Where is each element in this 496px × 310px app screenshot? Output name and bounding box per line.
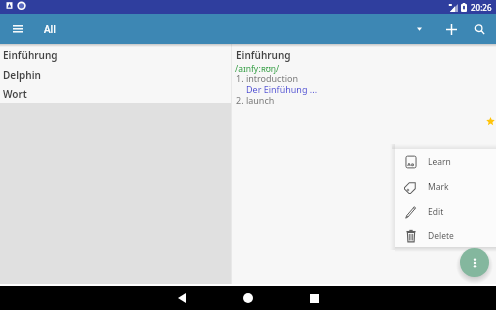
staticText: 1. introduction (236, 72, 299, 84)
button[interactable]: Delphin (0, 64, 231, 84)
button[interactable]: Wort (0, 83, 231, 103)
button[interactable]: Search (465, 14, 493, 44)
button[interactable]: Add (437, 14, 465, 44)
staticText: 2. launch (236, 94, 275, 106)
staticText: Edit (428, 206, 444, 218)
staticText: Der Einfühung ... (246, 83, 318, 95)
staticText: 20:26 (471, 2, 492, 13)
staticText: Learn (428, 156, 451, 168)
button[interactable]: Edit (395, 199, 496, 224)
button[interactable]: Home (230, 286, 266, 310)
button[interactable]: Recents (296, 286, 332, 310)
button[interactable]: Delete (395, 224, 496, 247)
staticText: Einführung (3, 48, 58, 62)
staticText: Delphin (3, 68, 41, 82)
staticText: Delete (428, 230, 454, 242)
staticText: Einführung (236, 48, 291, 62)
button[interactable]: Learn (395, 149, 496, 174)
button[interactable]: Einführung (0, 44, 231, 64)
staticText: /aɪnfyːʀʊŋ/ (235, 63, 280, 75)
button[interactable]: Filter (405, 14, 433, 44)
button[interactable]: Open navigation menu (3, 14, 33, 44)
staticText: Mark (428, 181, 449, 193)
button[interactable]: Mark (395, 174, 496, 199)
staticText: All (44, 22, 56, 36)
button[interactable]: More options (460, 248, 489, 277)
button[interactable]: Back (164, 286, 200, 310)
staticText: Wort (3, 87, 27, 101)
